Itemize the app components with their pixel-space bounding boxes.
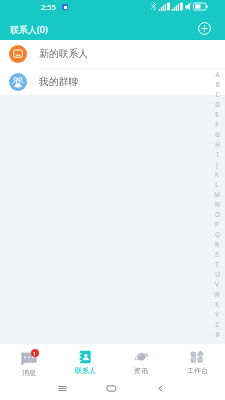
staticText: G [215, 130, 220, 139]
staticText: P [215, 220, 219, 229]
staticText: 联系人 [75, 366, 96, 375]
staticText: Q [215, 230, 220, 239]
staticText: C [215, 90, 220, 99]
staticText: R [215, 240, 219, 249]
staticText: X [215, 300, 219, 309]
button[interactable]: Home [106, 383, 117, 394]
staticText: F [215, 120, 219, 129]
staticText: S [215, 250, 219, 259]
staticText: J [216, 160, 218, 169]
staticText: Z [215, 320, 219, 329]
staticText: T [215, 260, 219, 269]
staticText: V [215, 280, 219, 289]
staticText: 消息 [22, 368, 36, 376]
staticText: 我的群聊 [39, 76, 79, 88]
button[interactable]: 我的群聊 [0, 69, 225, 95]
staticText: # [215, 330, 220, 339]
staticText: I [216, 150, 219, 159]
staticText: D [215, 100, 220, 109]
button[interactable]: 工作台 [169, 344, 225, 376]
staticText: Y [215, 310, 219, 319]
staticText: 资讯 [134, 366, 148, 375]
staticText: M [214, 190, 220, 199]
button[interactable]: 资讯 [113, 344, 169, 376]
button[interactable]: 新的联系人 [0, 40, 225, 68]
staticText: 2:55 [41, 2, 56, 12]
staticText: K [215, 170, 219, 179]
staticText: B [215, 80, 220, 89]
staticText: 1 [33, 350, 37, 357]
staticText: U [215, 270, 220, 279]
button[interactable]: Back [155, 383, 166, 394]
staticText: O [215, 210, 220, 219]
staticText: 工作台 [187, 366, 208, 375]
staticText: A [215, 70, 220, 79]
button[interactable]: Add contact [198, 22, 211, 35]
button[interactable]: Recents [57, 383, 68, 394]
staticText: 新的联系人 [39, 48, 88, 60]
button[interactable]: 联系人 [57, 344, 113, 376]
staticText: W [214, 290, 220, 299]
staticText: E [215, 110, 219, 119]
button[interactable]: 1 [0, 344, 57, 376]
staticText: H [215, 140, 220, 149]
staticText: 联系人(0) [10, 23, 48, 35]
staticText: L [215, 180, 219, 189]
staticText: N [215, 200, 220, 209]
